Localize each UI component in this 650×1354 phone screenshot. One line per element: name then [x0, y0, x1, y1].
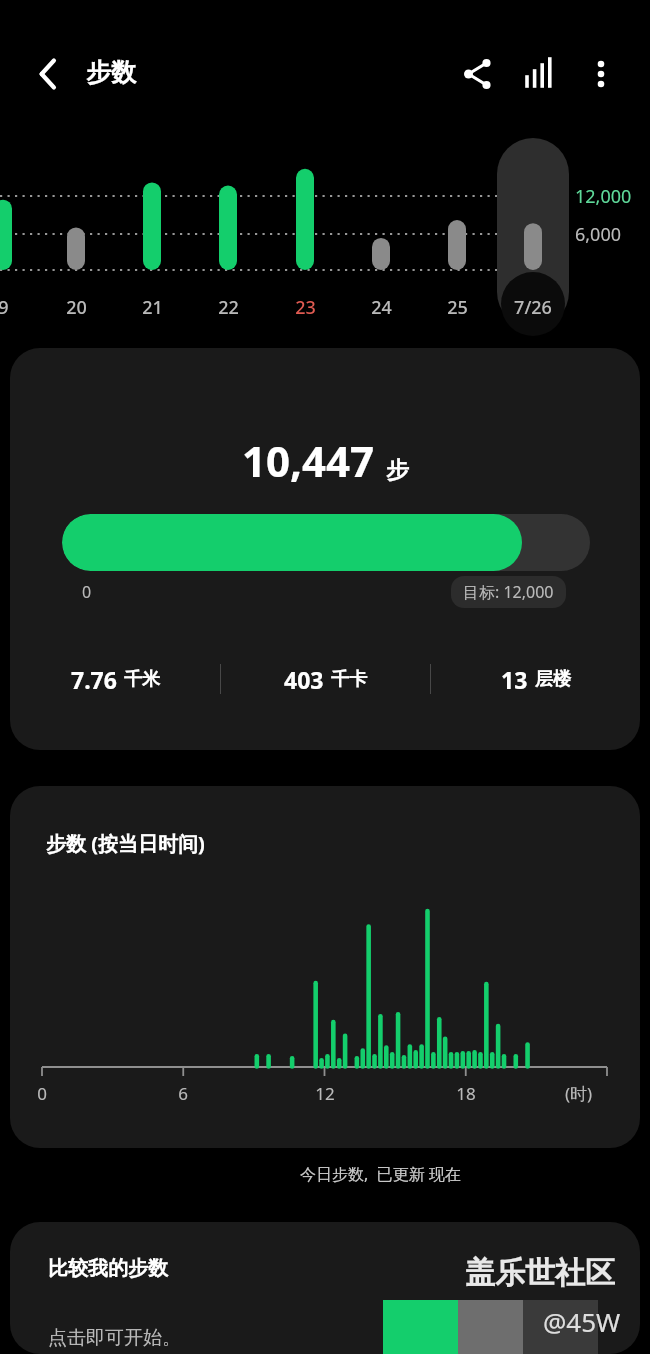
staticText: 23: [295, 295, 316, 320]
staticText: 20: [66, 295, 87, 320]
staticText: 12: [315, 1082, 335, 1105]
button[interactable]: 13: [431, 653, 640, 705]
staticText: 步: [386, 456, 409, 485]
staticText: 7/26: [514, 295, 552, 320]
button[interactable]: 比较我的步数: [10, 1222, 640, 1354]
staticText: 千卡: [331, 668, 367, 691]
button[interactable]: 21: [118, 290, 186, 324]
staticText: 盖乐世社区: [465, 1254, 615, 1292]
staticText: 6,000: [575, 222, 622, 247]
button[interactable]: 7.76: [10, 653, 220, 705]
staticText: 点击即可开始。: [48, 1326, 181, 1350]
staticText: 目标: 12,000: [463, 581, 554, 603]
button[interactable]: 23: [271, 290, 339, 324]
staticText: 21: [142, 295, 163, 320]
staticText: 步数 (按当日时间): [46, 830, 205, 857]
staticText: 步数: [86, 57, 136, 88]
staticText: 千米: [124, 668, 160, 691]
button[interactable]: Chart: [518, 51, 564, 97]
button[interactable]: 步数 (按当日时间): [10, 786, 640, 1148]
staticText: 22: [218, 295, 239, 320]
button[interactable]: 9: [0, 290, 37, 324]
staticText: 比较我的步数: [48, 1256, 168, 1281]
staticText: 层楼: [535, 668, 571, 691]
button[interactable]: [497, 138, 569, 328]
button[interactable]: 目标: 12,000: [463, 581, 554, 603]
staticText: 0: [82, 581, 92, 603]
staticText: 今日步数, 已更新 现在: [300, 1163, 461, 1185]
staticText: 18: [456, 1082, 476, 1105]
button[interactable]: 24: [347, 290, 415, 324]
button[interactable]: More options: [578, 51, 624, 97]
staticText: 0: [37, 1082, 47, 1105]
staticText: 403: [284, 664, 324, 695]
staticText: 24: [371, 295, 392, 320]
staticText: 10,447: [242, 432, 375, 489]
button[interactable]: Share: [455, 51, 501, 97]
staticText: 13: [501, 664, 528, 695]
staticText: 12,000: [575, 184, 632, 209]
staticText: 9: [0, 295, 9, 320]
button[interactable]: 25: [423, 290, 491, 324]
button[interactable]: Back: [24, 50, 72, 98]
staticText: 25: [447, 295, 468, 320]
button[interactable]: 7/26: [499, 290, 567, 324]
staticText: (时): [565, 1082, 593, 1105]
button[interactable]: 22: [194, 290, 262, 324]
button[interactable]: 403: [221, 653, 430, 705]
button[interactable]: 20: [42, 290, 110, 324]
staticText: 6: [178, 1082, 188, 1105]
staticText: @45W: [543, 1304, 621, 1339]
button[interactable]: 10,447: [10, 348, 640, 750]
staticText: 7.76: [71, 664, 117, 695]
